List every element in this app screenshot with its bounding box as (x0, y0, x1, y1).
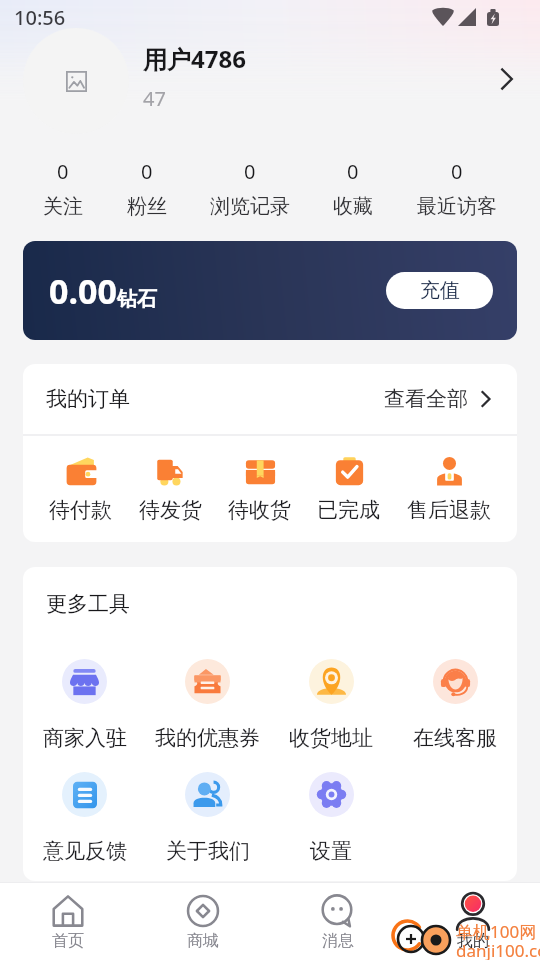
staticText: 已完成 (317, 497, 380, 523)
staticText: 充值 (420, 278, 460, 303)
button[interactable]: 0 (43, 158, 83, 219)
button[interactable]: 0 (127, 158, 167, 219)
staticText: 粉丝 (127, 194, 167, 219)
staticText: 在线客服 (413, 725, 497, 751)
button[interactable]: 0 (333, 158, 373, 219)
staticText: 我的订单 (46, 386, 130, 412)
button[interactable]: 在线客服 (393, 659, 517, 751)
staticText: 更多工具 (46, 591, 130, 617)
button[interactable]: 售后退款 (407, 455, 491, 523)
staticText: 意见反馈 (43, 838, 127, 864)
staticText: 47 (143, 85, 166, 112)
staticText: 商家入驻 (43, 725, 127, 751)
staticText: 0 (451, 158, 463, 185)
staticText: 查看全部 (384, 386, 468, 412)
staticText: 首页 (52, 931, 84, 951)
button[interactable]: 0 (210, 158, 290, 219)
staticText: 商城 (187, 931, 219, 951)
staticText: 0.00 (49, 268, 117, 314)
staticText: 待付款 (49, 497, 112, 523)
staticText: 我的 (457, 931, 489, 951)
button[interactable]: Profile details (490, 62, 524, 96)
button[interactable]: 待收货 (228, 455, 291, 523)
staticText: 消息 (322, 931, 354, 951)
staticText: 用户4786 (143, 42, 246, 75)
button[interactable]: 商家入驻 (23, 659, 146, 751)
staticText: 关于我们 (166, 838, 250, 864)
button[interactable]: 待发货 (139, 455, 202, 523)
staticText: 关注 (43, 194, 83, 219)
staticText: 钻石 (117, 287, 157, 312)
button[interactable]: 我的优惠券 (146, 659, 269, 751)
staticText: 待收货 (228, 497, 291, 523)
button[interactable]: 我的 (405, 883, 540, 960)
staticText: 收藏 (333, 194, 373, 219)
button[interactable]: 消息 (270, 883, 405, 960)
button[interactable]: 已完成 (317, 455, 380, 523)
staticText: danji100.com (456, 939, 540, 960)
button[interactable]: 待付款 (49, 455, 112, 523)
staticText: 收货地址 (289, 725, 373, 751)
staticText: 单机100网 (456, 920, 537, 943)
button[interactable]: 0 (417, 158, 497, 219)
staticText: 待发货 (139, 497, 202, 523)
button[interactable]: 收货地址 (269, 659, 393, 751)
staticText: 0 (347, 158, 359, 185)
button[interactable]: 商城 (135, 883, 270, 960)
button[interactable]: 设置 (269, 772, 393, 864)
staticText: 最近访客 (417, 194, 497, 219)
staticText: 10:56 (14, 4, 66, 31)
staticText: 设置 (310, 838, 352, 864)
button[interactable]: 意见反馈 (23, 772, 146, 864)
button[interactable]: 充值 (386, 272, 493, 309)
staticText: 0 (141, 158, 153, 185)
staticText: 售后退款 (407, 497, 491, 523)
staticText: 0 (244, 158, 256, 185)
staticText: 我的优惠券 (155, 725, 260, 751)
button[interactable]: 我的订单 (46, 364, 494, 434)
button[interactable]: 首页 (0, 883, 135, 960)
button[interactable]: 0.00 (23, 241, 517, 340)
button[interactable]: 关于我们 (146, 772, 269, 864)
staticText: 0 (57, 158, 69, 185)
button[interactable]: Avatar (23, 28, 129, 134)
staticText: 浏览记录 (210, 194, 290, 219)
